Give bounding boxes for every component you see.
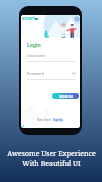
- staticText: Username: [27, 53, 46, 58]
- button[interactable]: New User?: [37, 118, 64, 122]
- staticText: New User?: [37, 118, 53, 122]
- button[interactable]: Show password: [72, 72, 76, 75]
- staticText: Login: [27, 42, 41, 49]
- button[interactable]: Settings: [75, 17, 79, 21]
- staticText: smart: [22, 15, 35, 21]
- staticText: Password: [27, 71, 45, 76]
- staticText: SignUp: [53, 118, 64, 122]
- button[interactable]: SIGN IN: [52, 93, 79, 99]
- staticText: With Beautiful UI: [22, 159, 81, 169]
- staticText: Awesome User Experience: [7, 149, 96, 159]
- staticText: SIGN IN: [59, 94, 73, 99]
